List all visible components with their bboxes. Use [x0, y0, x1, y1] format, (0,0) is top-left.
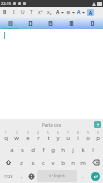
staticText: y [56, 134, 60, 142]
staticText: k [81, 146, 85, 154]
staticText: 9 [87, 131, 89, 135]
button[interactable]: Space [37, 170, 77, 182]
button[interactable]: v [48, 156, 58, 169]
button[interactable]: U [19, 9, 26, 16]
staticText: T [30, 9, 33, 16]
staticText: 8 [77, 131, 79, 135]
button[interactable]: ≡ [66, 9, 75, 15]
staticText: A [77, 9, 81, 16]
staticText: B [3, 9, 7, 16]
button[interactable]: Tab 5 [82, 17, 103, 29]
button[interactable]: 3 [22, 130, 33, 143]
staticText: 22:15 [1, 1, 12, 6]
button[interactable]: T [28, 9, 35, 16]
button[interactable]: Tab 4 [61, 17, 82, 29]
button[interactable]: x₂ [46, 9, 53, 16]
staticText: I [13, 9, 15, 16]
button[interactable]: ?123 [0, 169, 17, 183]
staticText: x [31, 159, 35, 167]
button[interactable]: 2 [11, 130, 22, 143]
button[interactable]: 6 [53, 130, 63, 143]
staticText: d [31, 146, 35, 154]
staticText: n [71, 159, 75, 167]
button[interactable]: 5 [43, 130, 53, 143]
button[interactable]: l [88, 143, 98, 156]
button[interactable]: 9 [83, 130, 93, 143]
button[interactable]: f [38, 143, 48, 156]
staticText: 6 [57, 131, 59, 135]
button[interactable]: c [38, 156, 48, 169]
button[interactable]: Backspace [88, 156, 103, 169]
staticText: q [4, 134, 8, 142]
staticText: 3 [27, 131, 29, 135]
button[interactable]: 8 [73, 130, 83, 143]
staticText: p [96, 134, 100, 142]
button[interactable]: Tab 2 [20, 17, 40, 29]
button[interactable]: 1 [0, 130, 11, 143]
button[interactable]: m [78, 156, 88, 169]
staticText: Parla ora [42, 122, 61, 128]
button[interactable]: k [78, 143, 88, 156]
staticText: ≡ [66, 9, 71, 15]
button[interactable]: s [17, 143, 28, 156]
staticText: l [92, 146, 94, 154]
staticText: v [51, 159, 55, 167]
staticText: h [61, 146, 65, 154]
staticText: x² [38, 9, 43, 16]
staticText: , [21, 173, 23, 180]
button[interactable] [0, 29, 103, 119]
button[interactable]: 0 [93, 130, 103, 143]
staticText: m [80, 159, 86, 167]
staticText: b [61, 159, 65, 167]
button[interactable]: 7 [63, 130, 73, 143]
button[interactable]: d [28, 143, 38, 156]
button[interactable]: x² [37, 9, 44, 16]
button[interactable]: B [1, 9, 8, 16]
staticText: x₂ [47, 9, 52, 16]
staticText: g [51, 146, 55, 154]
button[interactable]: 4 [33, 130, 43, 143]
staticText: ?123 [4, 174, 13, 179]
button[interactable]: Enter [91, 172, 100, 181]
staticText: s [21, 146, 24, 154]
staticText: w [14, 134, 19, 142]
staticText: A [56, 9, 60, 16]
button[interactable]: j [68, 143, 78, 156]
staticText: U [21, 9, 25, 16]
staticText: t [47, 134, 50, 142]
button[interactable]: g [48, 143, 58, 156]
staticText: j [72, 146, 74, 154]
button[interactable]: Tab 3 [40, 17, 61, 29]
button[interactable]: A [56, 9, 64, 16]
staticText: r [37, 134, 40, 142]
staticText: . [82, 173, 84, 180]
button[interactable]: Highlight colour [87, 9, 94, 16]
button[interactable]: h [58, 143, 68, 156]
button[interactable]: Shift [0, 156, 16, 169]
button[interactable]: A [77, 9, 85, 16]
button[interactable]: x [27, 156, 38, 169]
button[interactable]: I [10, 9, 17, 16]
staticText: z [20, 159, 23, 167]
staticText: c [42, 159, 45, 167]
staticText: 2 [16, 131, 18, 135]
staticText: 1 [5, 131, 7, 135]
button[interactable]: Emoji [17, 169, 26, 183]
staticText: it • English [49, 174, 65, 178]
staticText: 7 [67, 131, 69, 135]
button[interactable]: Voice input [94, 121, 101, 128]
button[interactable]: z [16, 156, 27, 169]
staticText: u [66, 134, 70, 142]
staticText: a [10, 146, 14, 154]
staticText: e [26, 134, 30, 142]
button[interactable]: n [68, 156, 78, 169]
button[interactable]: a [6, 143, 17, 156]
staticText: i [77, 134, 79, 142]
button[interactable]: . [78, 169, 87, 183]
staticText: A [89, 10, 93, 16]
button[interactable]: Change language [26, 169, 36, 183]
button[interactable]: b [58, 156, 68, 169]
button[interactable]: Tab 1 [0, 17, 20, 29]
staticText: 4 [37, 131, 39, 135]
staticText: 0 [97, 131, 99, 135]
